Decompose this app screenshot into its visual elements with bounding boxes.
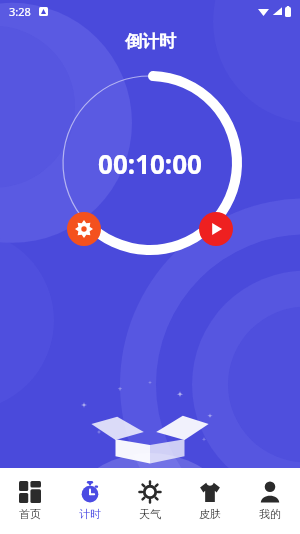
button[interactable]: Start xyxy=(199,212,233,246)
staticText: 首页 xyxy=(19,507,41,521)
button[interactable]: Settings xyxy=(67,212,101,246)
staticText: 倒计时 xyxy=(125,31,176,52)
staticText: 计时 xyxy=(79,507,101,521)
button[interactable]: 皮肤 xyxy=(180,468,240,534)
staticText: 天气 xyxy=(139,507,161,521)
staticText: 我的 xyxy=(259,507,281,521)
staticText: 皮肤 xyxy=(199,507,221,521)
staticText: 00:10:00 xyxy=(98,146,202,181)
button[interactable]: 我的 xyxy=(240,468,300,534)
button[interactable]: 首页 xyxy=(0,468,60,534)
button[interactable]: 计时 xyxy=(60,468,120,534)
staticText: 3:28 xyxy=(9,4,31,19)
button[interactable]: 天气 xyxy=(120,468,180,534)
